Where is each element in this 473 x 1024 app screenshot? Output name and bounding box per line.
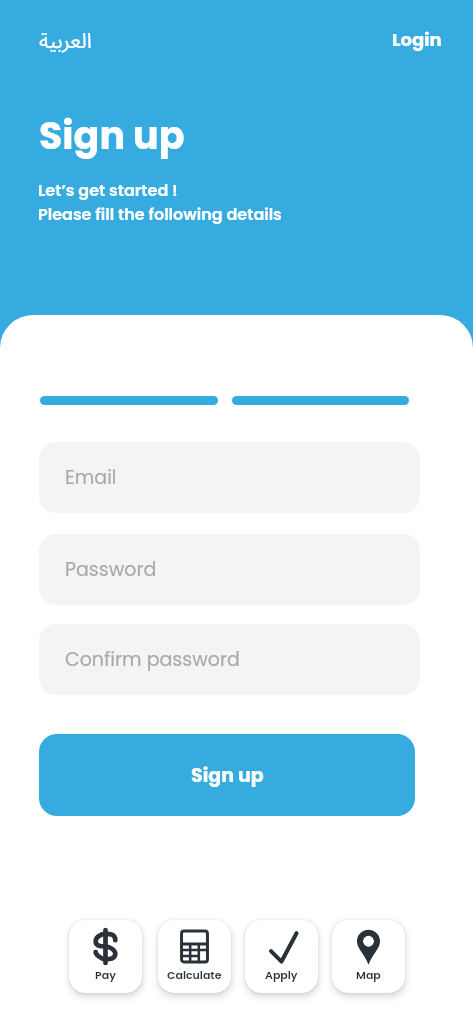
staticText: Confirm password bbox=[65, 646, 240, 673]
staticText: Password bbox=[65, 556, 157, 583]
staticText: Pay bbox=[95, 967, 116, 982]
staticText: Email bbox=[65, 464, 117, 491]
button[interactable]: Step 2 bbox=[232, 396, 409, 405]
button[interactable]: Map bbox=[332, 920, 405, 993]
staticText: Login bbox=[392, 27, 442, 52]
button[interactable]: Step 1 bbox=[40, 396, 218, 405]
staticText: Let’s get started ! Please fill the foll… bbox=[38, 179, 282, 226]
button[interactable]: Email bbox=[39, 442, 420, 513]
staticText: Map bbox=[356, 967, 381, 982]
button[interactable]: العربية bbox=[39, 19, 92, 63]
button[interactable]: Apply bbox=[245, 920, 318, 993]
button[interactable]: Confirm password bbox=[39, 624, 420, 695]
button[interactable]: Sign up bbox=[39, 734, 415, 816]
button[interactable]: Login bbox=[392, 27, 442, 52]
button[interactable]: Pay bbox=[69, 920, 142, 993]
staticText: Sign up bbox=[191, 762, 264, 789]
staticText: Sign up bbox=[39, 109, 185, 162]
staticText: Calculate bbox=[167, 967, 222, 982]
staticText: العربية bbox=[39, 19, 92, 63]
button[interactable]: Calculate bbox=[158, 920, 231, 993]
button[interactable]: Password bbox=[39, 534, 420, 605]
staticText: Apply bbox=[265, 967, 298, 982]
